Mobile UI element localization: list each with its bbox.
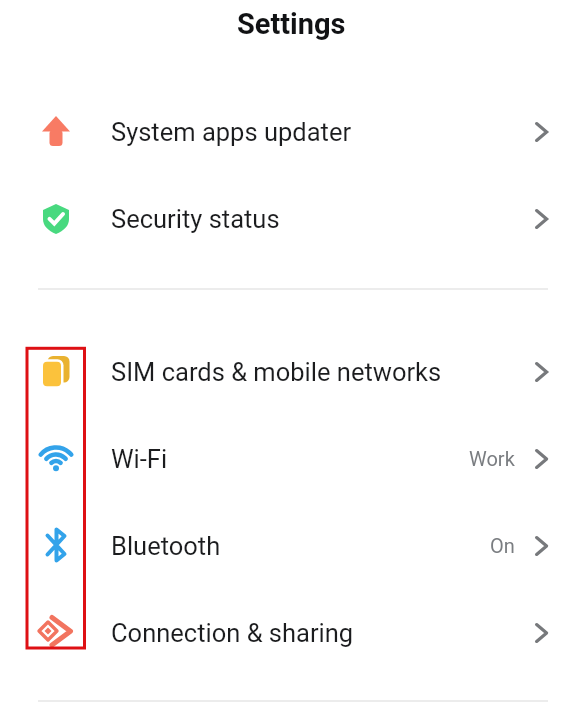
staticText: System apps updater [111, 117, 352, 147]
button[interactable]: System apps updater [0, 88, 563, 175]
button[interactable]: Security status [0, 175, 563, 262]
button[interactable]: SIM cards & mobile networks [0, 328, 563, 415]
button[interactable]: Bluetooth [0, 502, 563, 589]
staticText: SIM cards & mobile networks [111, 357, 442, 387]
staticText: Security status [111, 204, 280, 234]
staticText: Work [469, 447, 515, 470]
staticText: On [490, 534, 515, 557]
button[interactable]: Connection & sharing [0, 589, 563, 676]
staticText: Settings [237, 7, 346, 41]
staticText: Connection & sharing [111, 618, 354, 648]
staticText: Wi-Fi [111, 444, 168, 474]
button[interactable]: Wi-Fi [0, 415, 563, 502]
staticText: Bluetooth [111, 531, 221, 561]
